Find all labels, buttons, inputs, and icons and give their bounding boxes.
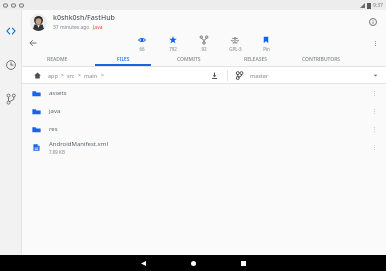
staticText: FILES xyxy=(117,56,130,63)
staticText: 9:37 xyxy=(373,2,383,9)
staticText: > xyxy=(78,72,81,79)
button[interactable]: Download xyxy=(208,69,221,82)
button[interactable]: Code xyxy=(0,20,21,41)
button[interactable]: File options xyxy=(367,86,381,100)
staticText: RELEASES xyxy=(244,56,267,63)
staticText: assets xyxy=(49,89,67,97)
button[interactable]: File options xyxy=(367,140,381,154)
button[interactable]: res xyxy=(22,120,386,138)
staticText: k0shk0sh/FastHub xyxy=(53,13,115,23)
button[interactable]: README xyxy=(24,52,90,66)
button[interactable]: File options xyxy=(367,104,381,118)
staticText: CONTRIBUTORS xyxy=(302,56,341,63)
button[interactable]: main xyxy=(84,72,98,79)
staticText: java xyxy=(49,107,61,115)
button[interactable]: Back xyxy=(130,255,156,271)
staticText: 92 xyxy=(201,46,207,52)
button[interactable]: 792 xyxy=(163,34,183,52)
button[interactable]: COMMITS xyxy=(156,52,222,66)
button[interactable]: src xyxy=(67,72,75,79)
staticText: 7.89 KB xyxy=(49,149,65,155)
button[interactable]: 92 xyxy=(194,34,214,52)
staticText: res xyxy=(49,125,58,133)
staticText: COMMITS xyxy=(177,56,201,63)
button[interactable]: AndroidManifest.xml xyxy=(22,138,386,156)
staticText: > xyxy=(101,72,104,79)
button[interactable]: RELEASES xyxy=(222,52,288,66)
button[interactable]: 66 xyxy=(132,34,152,52)
button[interactable]: app xyxy=(48,72,58,79)
button[interactable]: assets xyxy=(22,84,386,102)
staticText: > xyxy=(61,72,64,79)
button[interactable]: Recents xyxy=(230,255,256,271)
button[interactable]: CONTRIBUTORS xyxy=(288,52,354,66)
button[interactable]: master xyxy=(250,72,269,79)
button[interactable]: File options xyxy=(367,122,381,136)
staticText: AndroidManifest.xml xyxy=(49,140,108,148)
staticText: 792 xyxy=(169,46,177,52)
button[interactable]: Branch xyxy=(234,70,244,80)
staticText: 37 minutes ago xyxy=(53,24,90,31)
button[interactable]: Info xyxy=(364,13,382,31)
staticText: GPL-3 xyxy=(229,46,242,52)
button[interactable]: Pull requests xyxy=(0,88,21,109)
staticText: Pin xyxy=(263,46,270,52)
button[interactable]: More options xyxy=(367,35,383,51)
button[interactable]: Pin xyxy=(256,34,276,52)
button[interactable]: GPL-3 xyxy=(225,34,245,52)
button[interactable]: java xyxy=(22,102,386,120)
button[interactable]: Issues xyxy=(0,54,21,75)
button[interactable]: Select branch xyxy=(370,70,380,80)
staticText: Java xyxy=(93,24,103,31)
button[interactable]: Home xyxy=(180,255,206,271)
button[interactable]: Home xyxy=(31,69,43,81)
staticText: README xyxy=(47,56,68,63)
staticText: 66 xyxy=(139,46,145,52)
button[interactable]: Back xyxy=(25,35,41,51)
button[interactable]: FILES xyxy=(90,52,156,66)
